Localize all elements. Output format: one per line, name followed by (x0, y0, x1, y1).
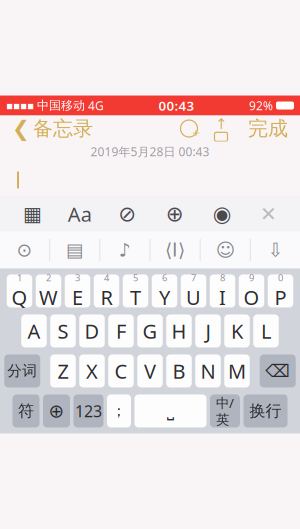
button[interactable]: ⎵ (134, 394, 206, 427)
staticText: ＋ (190, 125, 202, 140)
button[interactable]: D (79, 314, 105, 347)
button[interactable]: 分词 (4, 354, 40, 387)
button[interactable]: C (108, 354, 134, 387)
staticText: ☺ (216, 239, 235, 261)
staticText: O (243, 284, 259, 310)
staticText: ▦ (23, 203, 42, 225)
staticText: R (100, 284, 112, 310)
staticText: I (219, 284, 226, 310)
staticText: ❮ (12, 116, 30, 141)
staticText: ⊙ (17, 239, 33, 261)
staticText: ⟨Ⅰ⟩ (165, 239, 185, 261)
button[interactable]: ⌫ (260, 354, 296, 387)
button[interactable]: 4 (94, 274, 119, 307)
button[interactable]: 收起键盘 (251, 232, 300, 268)
button[interactable]: ⊕ (43, 394, 70, 427)
button[interactable]: K (224, 314, 250, 347)
button[interactable]: 关闭 (255, 199, 283, 229)
button[interactable]: F (108, 314, 134, 347)
staticText: ◉ (213, 202, 232, 226)
staticText: 分词 (7, 362, 37, 380)
staticText: X (86, 358, 98, 384)
staticText: ⊕ (48, 400, 64, 422)
button[interactable]: 光标 (150, 232, 200, 268)
button[interactable]: X (79, 354, 105, 387)
staticText: M (228, 358, 246, 384)
staticText: 符 (18, 401, 34, 421)
button[interactable]: M (224, 354, 250, 387)
staticText: ▪▪▪▪ (6, 99, 34, 112)
staticText: ； (111, 402, 126, 420)
staticText: Q (11, 284, 27, 310)
staticText: 2 (46, 271, 51, 284)
button[interactable]: S (50, 314, 76, 347)
staticText: 6 (162, 271, 167, 284)
button[interactable]: 1 (7, 274, 32, 307)
button[interactable]: 3 (65, 274, 90, 307)
button[interactable]: 5 (123, 274, 148, 307)
button[interactable]: 123 (73, 394, 103, 427)
button[interactable]: G (137, 314, 163, 347)
button[interactable]: A (21, 314, 47, 347)
button[interactable]: 插入 (160, 199, 190, 229)
button[interactable]: 格式 (65, 199, 95, 229)
button[interactable]: ❮ (4, 112, 101, 145)
staticText: ⊘ (118, 202, 136, 226)
staticText: B (172, 358, 185, 384)
button[interactable]: 0 (268, 274, 293, 307)
staticText: 中国移动 (37, 98, 85, 113)
staticText: F (116, 318, 126, 344)
button[interactable]: 8 (210, 274, 235, 307)
staticText: L (261, 318, 271, 344)
staticText: D (84, 318, 99, 344)
button[interactable]: 分享 (202, 116, 240, 140)
button[interactable]: 6 (152, 274, 177, 307)
button[interactable]: N (195, 354, 221, 387)
staticText: E (72, 284, 83, 310)
staticText: P (274, 284, 286, 310)
staticText: ♪ (119, 239, 131, 261)
button[interactable]: 手写 (0, 232, 49, 268)
button[interactable]: 完成 (240, 112, 296, 145)
staticText: 0 (278, 271, 283, 284)
button[interactable]: L (253, 314, 279, 347)
button[interactable]: 换行 (243, 394, 287, 427)
button[interactable]: 2 (36, 274, 61, 307)
staticText: 7 (191, 271, 196, 284)
staticText: A (27, 318, 40, 344)
staticText: Z (57, 358, 68, 384)
staticText: N (200, 358, 215, 384)
staticText: 92% (249, 98, 273, 113)
staticText: ⌫ (265, 361, 290, 381)
button[interactable]: 表情 (201, 232, 250, 268)
staticText: 8 (220, 271, 225, 284)
staticText: ⇩ (267, 239, 283, 261)
staticText: S (57, 318, 68, 344)
button[interactable]: J (195, 314, 221, 347)
staticText: 完成 (248, 116, 288, 141)
button[interactable]: 7 (181, 274, 206, 307)
staticText: H (171, 318, 186, 344)
button[interactable]: H (166, 314, 192, 347)
staticText: T (130, 284, 141, 310)
button[interactable]: 手写 (207, 199, 237, 229)
button[interactable]: B (166, 354, 192, 387)
button[interactable]: 9 (239, 274, 264, 307)
button[interactable]: Z (50, 354, 76, 387)
staticText: 5 (133, 271, 138, 284)
staticText: U (186, 284, 201, 310)
staticText: W (39, 284, 58, 310)
button[interactable]: 语音 (100, 232, 149, 268)
button[interactable]: V (137, 354, 163, 387)
button[interactable]: 添加协作者 (176, 116, 202, 140)
staticText: ⎵ (167, 402, 174, 419)
staticText: 1 (17, 271, 22, 284)
button[interactable]: ； (107, 394, 131, 427)
staticText: G (142, 318, 157, 344)
button[interactable]: 中/英 (210, 394, 240, 427)
button[interactable]: 剪贴板 (50, 232, 99, 268)
button[interactable]: 清单 (112, 199, 142, 229)
staticText: J (205, 318, 210, 344)
button[interactable]: 符 (12, 394, 39, 427)
button[interactable]: 表格 (17, 199, 47, 229)
